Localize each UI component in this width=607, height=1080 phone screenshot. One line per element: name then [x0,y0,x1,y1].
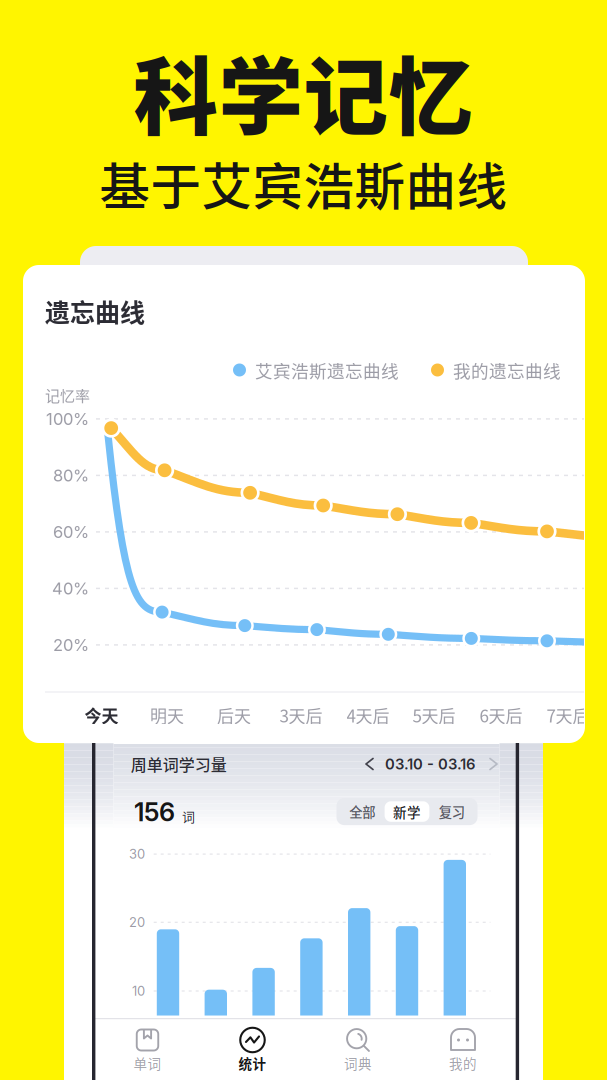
staticText: 4天后 [346,703,389,727]
staticText: 60% [53,522,89,542]
staticText: 今天 [84,703,118,727]
staticText: 周单词学习量 [131,752,227,776]
staticText: 10 [132,983,145,999]
staticText: 我的 [449,1053,477,1073]
staticText: 03.10 - 03.16 [385,755,475,773]
staticText: 基于艾宾浩斯曲线 [99,146,507,219]
staticText: 3天后 [279,703,322,727]
staticText: 后天 [217,703,251,727]
staticText: 40% [52,578,89,598]
staticText: 5天后 [412,703,455,727]
staticText: 遗忘曲线 [45,293,145,329]
button[interactable]: 词典 [308,1021,408,1079]
staticText: 7天后 [546,703,589,727]
staticText: 6天后 [479,703,522,727]
button[interactable]: 03.10 - 03.16 [366,753,511,775]
staticText: 记忆率 [45,384,90,406]
button[interactable]: 新学 [385,801,429,822]
staticText: 80% [53,465,89,485]
staticText: 科学记忆 [133,30,473,152]
staticText: 词 [182,807,195,825]
staticText: 20 [129,914,145,930]
staticText: 明天 [150,703,184,727]
staticText: 艾宾浩斯遗忘曲线 [255,357,399,383]
staticText: 我的遗忘曲线 [453,357,561,383]
button[interactable]: 我的 [413,1021,513,1079]
staticText: 复习 [439,802,465,821]
staticText: 单词 [133,1053,161,1073]
staticText: 20% [53,635,89,655]
button[interactable]: 统计 [202,1021,302,1079]
staticText: 全部 [349,802,375,821]
staticText: 统计 [238,1053,266,1073]
staticText: 词典 [344,1053,372,1073]
staticText: 30 [129,846,145,862]
staticText: 156 [134,797,175,827]
button[interactable]: 单词 [97,1021,197,1079]
button[interactable]: 复习 [429,801,474,822]
staticText: 新学 [393,802,421,821]
button[interactable]: 全部 [340,801,385,822]
staticText: 100% [46,409,89,429]
